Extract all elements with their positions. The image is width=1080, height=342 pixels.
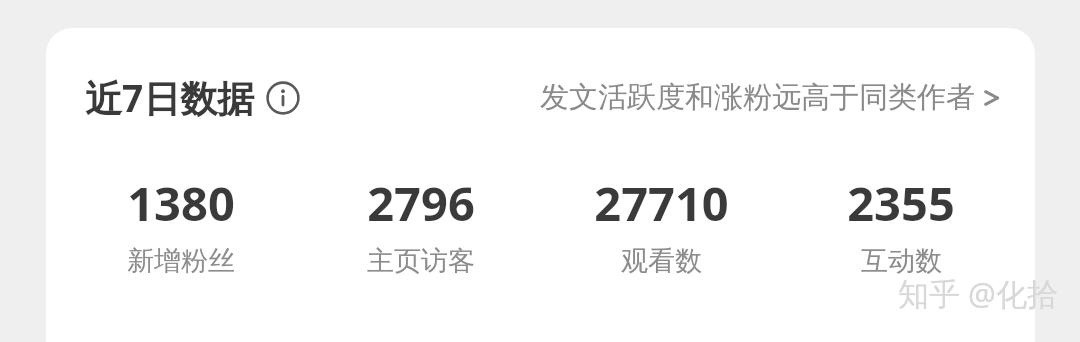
staticText: 发文活跃度和涨粉远高于同类作者 [540, 79, 975, 116]
staticText: 知乎 @化拾 [898, 272, 1058, 314]
button[interactable]: 发文活跃度和涨粉远高于同类作者 [540, 79, 1009, 116]
staticText: 27710 [594, 171, 729, 235]
staticText: 主页访客 [367, 244, 475, 278]
staticText: 互动数 [861, 244, 942, 278]
staticText: 2355 [847, 171, 955, 235]
staticText: 近7日数据 [85, 72, 255, 123]
button[interactable]: 2355 [781, 171, 1021, 278]
button[interactable]: 2796 [301, 171, 541, 278]
other: 数据说明 [266, 81, 300, 115]
staticText: 新增粉丝 [127, 244, 235, 278]
staticText: 2796 [367, 171, 475, 235]
button[interactable]: 近7日数据 [85, 72, 300, 123]
staticText: 1380 [127, 171, 235, 235]
button[interactable]: 1380 [60, 171, 301, 278]
staticText: 观看数 [621, 244, 702, 278]
button[interactable]: 27710 [541, 171, 781, 278]
